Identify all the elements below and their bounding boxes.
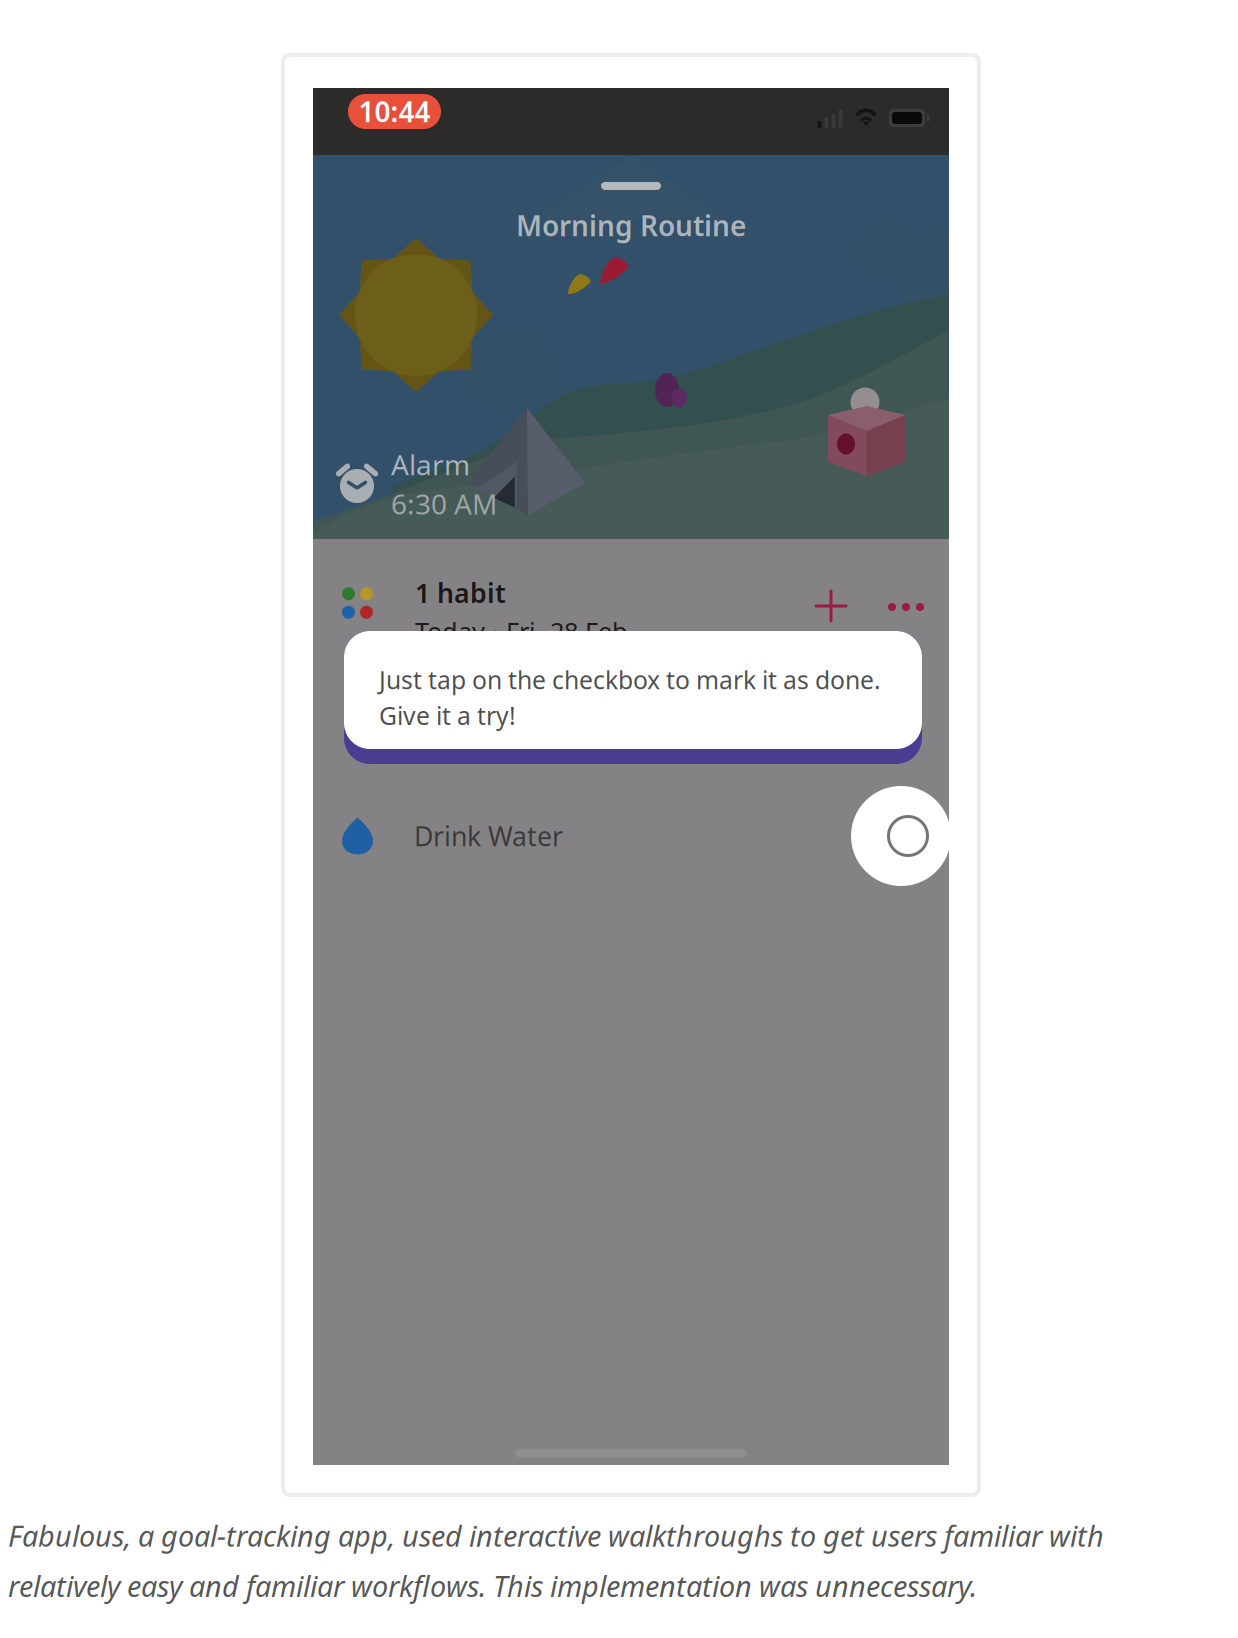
staticText: relatively easy and familiar workflows. … [8,1566,977,1605]
button[interactable]: Mark habit as done [851,786,951,886]
button[interactable]: Drink Water [313,788,949,884]
button[interactable]: More options [875,576,937,638]
staticText: Today · Fri, 28 Feb [415,614,628,648]
button[interactable]: Add habit [800,575,862,637]
staticText: Just tap on the checkbox to mark it as d… [379,663,881,697]
button[interactable]: Just tap on the checkbox to mark it as d… [344,631,922,764]
staticText: Morning Routine [516,207,746,244]
staticText: Drink Water [414,818,563,854]
staticText: Alarm [391,446,470,483]
staticText: Give it a try! [379,699,516,732]
staticText: 6:30 AM [391,485,497,522]
staticText: 10:44 [358,93,430,130]
staticText: Fabulous, a goal-tracking app, used inte… [8,1516,1104,1555]
staticText: 1 habit [415,575,506,610]
